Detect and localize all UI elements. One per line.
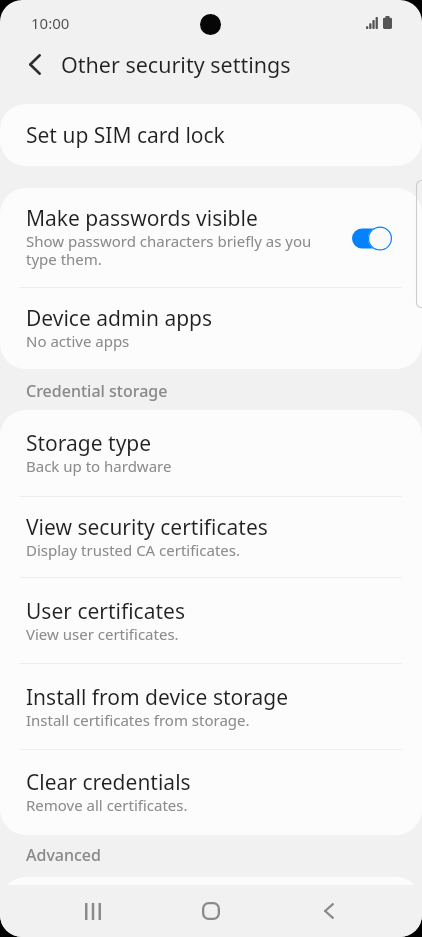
staticText: Remove all certificates. [26, 795, 188, 815]
staticText: View security certificates [26, 513, 268, 542]
button[interactable]: Recent apps [52, 885, 134, 937]
staticText: Back up to hardware [26, 456, 172, 476]
staticText: Display trusted CA certificates. [26, 540, 240, 560]
staticText: Biometrics [26, 893, 132, 922]
button[interactable]: Install from device storage [0, 664, 422, 750]
staticText: Install certificates from storage. [26, 710, 250, 730]
staticText: No active apps [26, 331, 130, 351]
staticText: Credential storage [26, 380, 168, 402]
staticText: Clear credentials [26, 768, 191, 797]
button[interactable]: Storage type [0, 410, 422, 497]
button[interactable]: Back [288, 885, 370, 937]
button[interactable]: View security certificates [0, 497, 422, 578]
staticText: Make passwords visible [26, 204, 258, 233]
button[interactable]: User certificates [0, 578, 422, 664]
button[interactable]: Set up SIM card lock [0, 104, 422, 166]
button[interactable]: Clear credentials [0, 750, 422, 835]
button[interactable]: Biometrics [0, 877, 422, 937]
staticText: Advanced [26, 844, 101, 866]
staticText: Set up SIM card lock [26, 121, 225, 150]
button[interactable]: Device admin apps [0, 288, 422, 369]
staticText: 10:00 [31, 13, 70, 33]
staticText: User certificates [26, 597, 185, 626]
staticText: View user certificates. [26, 624, 179, 644]
staticText: Device admin apps [26, 304, 213, 333]
button[interactable]: Navigate up [11, 41, 58, 88]
button[interactable]: Home [170, 885, 252, 937]
staticText: Install from device storage [26, 683, 289, 712]
staticText: Storage type [26, 429, 152, 458]
staticText: Other security settings [61, 50, 291, 79]
staticText: Show password characters briefly as you … [26, 231, 321, 270]
button[interactable]: Make passwords visible [0, 188, 422, 288]
button[interactable]: Make passwords visible [352, 226, 392, 251]
